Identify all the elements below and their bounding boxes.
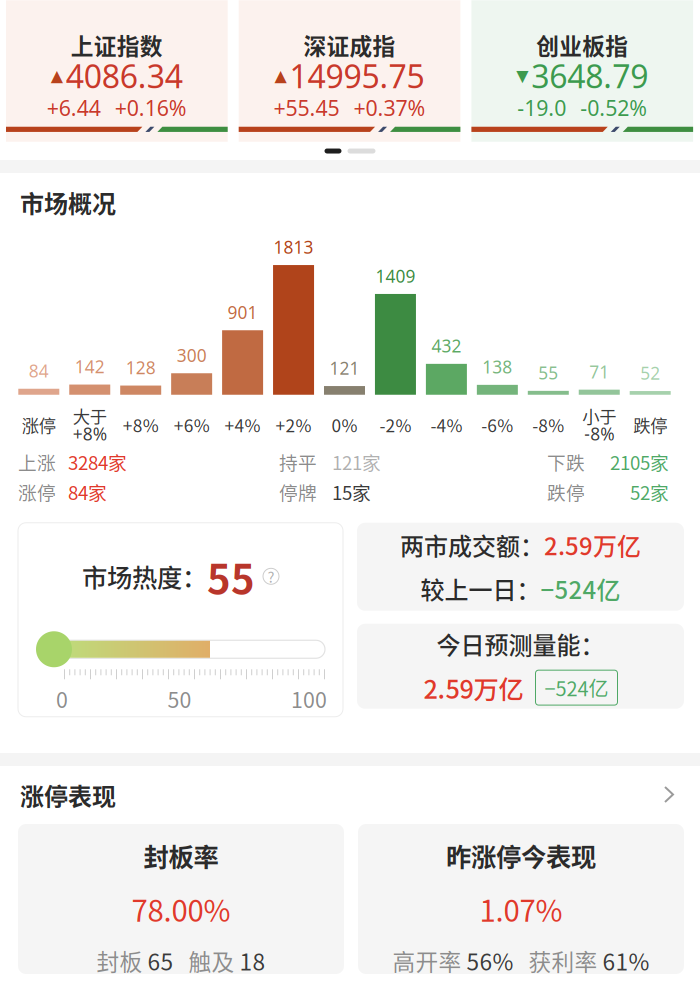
staticText: -8% bbox=[532, 412, 564, 437]
staticText: 142 bbox=[75, 355, 105, 378]
staticText: 跌停 bbox=[547, 478, 585, 505]
staticText: 上涨 bbox=[18, 448, 56, 475]
staticText: +55.45 bbox=[273, 93, 339, 122]
staticText: +0.16% bbox=[115, 93, 187, 122]
staticText: 138 bbox=[482, 355, 512, 379]
staticText: 121 bbox=[329, 356, 359, 380]
button[interactable]: 上证指数 bbox=[6, 0, 228, 142]
staticText: -6% bbox=[481, 412, 513, 437]
staticText: 1813 bbox=[274, 235, 314, 259]
staticText: 2.59万亿 bbox=[544, 527, 641, 562]
staticText: 市场概况 bbox=[20, 185, 116, 220]
staticText: 停牌 bbox=[279, 478, 317, 505]
staticText: +0.37% bbox=[353, 93, 425, 122]
staticText: 较上一日： bbox=[420, 571, 540, 606]
staticText: 封板率 bbox=[143, 837, 218, 874]
staticText: 涨停表现 bbox=[20, 778, 116, 812]
staticText: -0.52% bbox=[580, 93, 647, 122]
staticText: +4% bbox=[225, 412, 261, 437]
staticText: 持平 bbox=[279, 448, 317, 475]
staticText: 52 bbox=[640, 361, 660, 385]
staticText: 300 bbox=[177, 343, 207, 367]
staticText: ▲ bbox=[51, 66, 63, 85]
staticText: 100 bbox=[291, 683, 327, 714]
staticText: -8% bbox=[584, 422, 614, 445]
staticText: 52家 bbox=[630, 478, 669, 505]
staticText: 1409 bbox=[375, 264, 415, 288]
staticText: 涨停 bbox=[18, 478, 56, 505]
staticText: 3648.79 bbox=[531, 54, 648, 98]
staticText: 78.00% bbox=[131, 888, 230, 930]
staticText: 大于 bbox=[73, 403, 107, 428]
staticText: 涨停 bbox=[22, 412, 56, 437]
staticText: 55 bbox=[538, 361, 558, 385]
staticText: -4% bbox=[430, 412, 462, 437]
staticText: ▼ bbox=[516, 66, 528, 85]
staticText: -19.0 bbox=[517, 93, 566, 122]
button[interactable]: 深证成指 bbox=[239, 0, 460, 142]
staticText: +6.44 bbox=[47, 93, 101, 122]
staticText: 下跌 bbox=[547, 448, 585, 475]
staticText: 创业板指 bbox=[536, 28, 628, 61]
staticText: 84 bbox=[29, 359, 49, 382]
staticText: −524亿 bbox=[544, 673, 608, 702]
button[interactable]: 创业板指 bbox=[471, 0, 693, 142]
staticText: 两市成交额： bbox=[400, 527, 544, 562]
staticText: 深证成指 bbox=[303, 28, 395, 61]
staticText: 50 bbox=[167, 683, 191, 714]
staticText: 1.07% bbox=[479, 888, 562, 930]
staticText: 跌停 bbox=[633, 412, 667, 437]
button[interactable]: 涨停表现 bbox=[0, 766, 700, 824]
staticText: 65 bbox=[147, 944, 173, 977]
staticText: 84家 bbox=[68, 478, 107, 505]
staticText: 901 bbox=[228, 300, 258, 324]
staticText: -2% bbox=[379, 412, 411, 437]
staticText: 2.59万亿 bbox=[423, 669, 523, 706]
staticText: 432 bbox=[431, 334, 461, 358]
staticText: 触及 bbox=[188, 944, 239, 977]
staticText: 0% bbox=[331, 412, 357, 437]
staticText: 2105家 bbox=[610, 448, 669, 475]
staticText: 56% bbox=[466, 944, 513, 977]
staticText: ▲ bbox=[274, 66, 286, 85]
staticText: 小于 bbox=[582, 403, 616, 428]
staticText: +8% bbox=[73, 422, 107, 445]
staticText: ? bbox=[267, 566, 274, 587]
staticText: +6% bbox=[174, 412, 210, 437]
staticText: 3284家 bbox=[68, 448, 127, 475]
staticText: 上证指数 bbox=[71, 28, 163, 61]
staticText: 封板 bbox=[96, 944, 147, 977]
staticText: +8% bbox=[123, 412, 159, 437]
staticText: 61% bbox=[602, 944, 649, 977]
staticText: 128 bbox=[126, 356, 156, 379]
staticText: 4086.34 bbox=[66, 54, 183, 98]
staticText: 15家 bbox=[332, 478, 371, 505]
staticText: 高开率 bbox=[392, 944, 466, 977]
staticText: 0 bbox=[56, 683, 68, 714]
staticText: 14995.75 bbox=[289, 54, 424, 98]
staticText: 18 bbox=[239, 944, 265, 977]
staticText: −524亿 bbox=[540, 571, 620, 606]
staticText: 121家 bbox=[332, 448, 381, 475]
staticText: 71 bbox=[589, 360, 609, 383]
staticText: 昨涨停今表现 bbox=[446, 837, 596, 874]
staticText: +2% bbox=[276, 412, 312, 437]
staticText: 55 bbox=[207, 547, 255, 605]
staticText: 获利率 bbox=[528, 944, 602, 977]
staticText: 市场热度： bbox=[82, 558, 207, 595]
staticText: 今日预测量能： bbox=[436, 626, 604, 661]
